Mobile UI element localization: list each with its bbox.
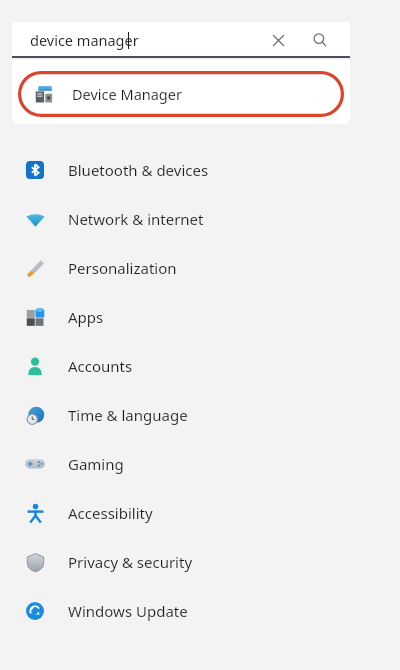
staticText: Network & internet xyxy=(68,209,204,229)
staticText: Windows Update xyxy=(68,601,188,621)
button[interactable]: Device Manager xyxy=(18,71,344,117)
button[interactable]: Apps xyxy=(0,292,400,341)
staticText: Personalization xyxy=(68,258,177,278)
staticText: Time & language xyxy=(68,405,188,425)
button[interactable]: Network & internet xyxy=(0,194,400,243)
button[interactable]: Time & language xyxy=(0,390,400,439)
button[interactable]: Accessibility xyxy=(0,488,400,537)
button[interactable]: Windows Update xyxy=(0,586,400,635)
staticText: Accounts xyxy=(68,356,133,376)
staticText: Bluetooth & devices xyxy=(68,160,209,180)
staticText: Privacy & security xyxy=(68,552,193,572)
staticText: Accessibility xyxy=(68,503,153,523)
staticText: Device Manager xyxy=(72,84,182,104)
staticText: Apps xyxy=(68,307,104,327)
button[interactable]: Clear search xyxy=(264,26,292,54)
button[interactable]: Accounts xyxy=(0,341,400,390)
button[interactable]: Personalization xyxy=(0,243,400,292)
button[interactable]: Bluetooth & devices xyxy=(0,145,400,194)
button[interactable]: Search xyxy=(306,26,334,54)
button[interactable]: Gaming xyxy=(0,439,400,488)
button[interactable]: Privacy & security xyxy=(0,537,400,586)
staticText: device manager xyxy=(30,30,139,50)
staticText: Gaming xyxy=(68,454,124,474)
